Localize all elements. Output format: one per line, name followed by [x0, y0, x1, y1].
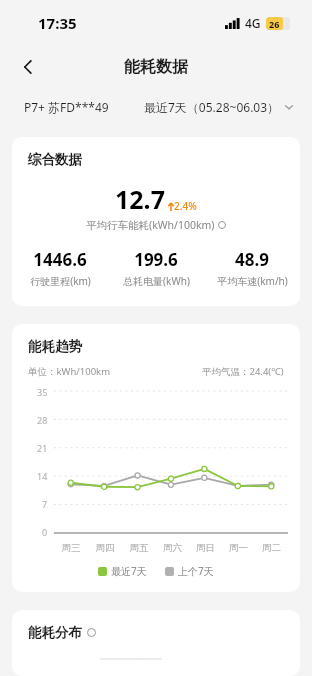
staticText: 最近7天（05.28~06.03） — [144, 99, 280, 115]
staticText: 17:35 — [38, 13, 77, 33]
button[interactable]: 能耗分布 — [12, 610, 300, 676]
staticText: 1446.6 — [33, 248, 87, 271]
staticText: 0 — [42, 526, 48, 538]
button[interactable]: 能耗趋势 — [12, 324, 300, 592]
staticText: 总耗电量(kWh) — [123, 274, 190, 288]
staticText: 35 — [37, 386, 48, 398]
button[interactable]: Back — [8, 47, 48, 87]
staticText: 28 — [37, 414, 48, 426]
button[interactable]: 最近7天（05.28~06.03） — [144, 99, 312, 115]
staticText: 能耗数据 — [124, 57, 188, 77]
staticText: 最近7天 — [111, 564, 147, 578]
staticText: 行驶里程(km) — [30, 274, 91, 288]
staticText: 单位：kWh/100km — [28, 365, 111, 378]
staticText: 21 — [37, 442, 48, 454]
staticText: 26 — [269, 18, 280, 30]
staticText: 上个7天 — [178, 564, 214, 578]
staticText: 平均车速(km/h) — [217, 274, 288, 288]
staticText: 周三 — [54, 542, 88, 554]
staticText: 周六 — [156, 542, 189, 554]
staticText: 周二 — [255, 542, 288, 554]
staticText: 14 — [37, 470, 48, 482]
button[interactable]: 综合数据 — [12, 137, 300, 306]
staticText: 周一 — [222, 542, 255, 554]
staticText: 平均行车能耗(kWh/100km) — [86, 218, 215, 232]
staticText: 199.6 — [134, 248, 178, 271]
staticText: 7 — [42, 498, 48, 510]
staticText: 周四 — [88, 542, 122, 554]
staticText: 平均气温：24.4(℃) — [202, 365, 284, 378]
staticText: 能耗分布 — [28, 624, 82, 641]
staticText: 48.9 — [235, 248, 269, 271]
staticText: P7+ 苏FD***49 — [24, 99, 109, 115]
staticText: 综合数据 — [28, 151, 82, 168]
staticText: 能耗趋势 — [28, 338, 82, 355]
staticText: 4G — [245, 15, 261, 31]
staticText: 2.4% — [174, 199, 197, 213]
staticText: 周日 — [189, 542, 222, 554]
staticText: 12.7 — [115, 182, 165, 216]
staticText: 周五 — [122, 542, 156, 554]
